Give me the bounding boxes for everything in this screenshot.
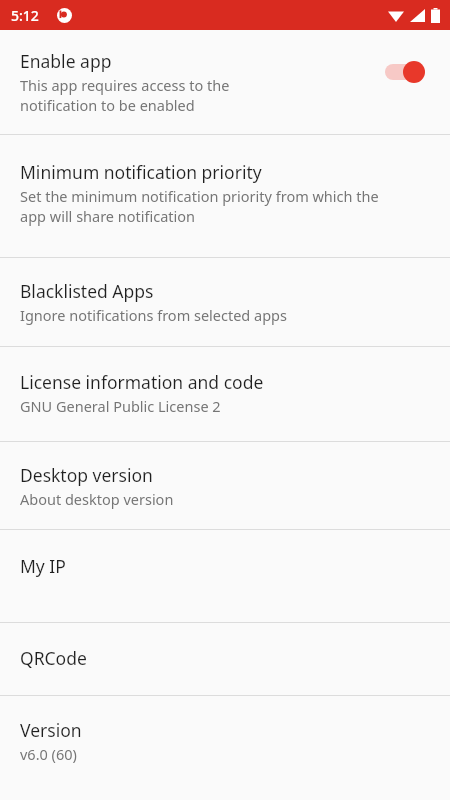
staticText: 5:12 xyxy=(11,6,39,25)
button[interactable]: Enable app xyxy=(0,30,450,134)
staticText: Minimum notification priority xyxy=(20,160,262,184)
staticText: v6.0 (60) xyxy=(20,744,77,764)
staticText: QRCode xyxy=(20,646,87,670)
button[interactable]: My IP xyxy=(0,530,450,622)
staticText: Ignore notifications from selected apps xyxy=(20,305,287,325)
button[interactable]: QRCode xyxy=(0,623,450,695)
button[interactable]: Version xyxy=(0,696,450,800)
button[interactable]: Blacklisted Apps xyxy=(0,258,450,346)
button[interactable]: Desktop version xyxy=(0,442,450,529)
staticText: My IP xyxy=(20,554,66,578)
button[interactable]: License information and code xyxy=(0,347,450,441)
button[interactable]: Minimum notification priority xyxy=(0,135,450,257)
staticText: Set the minimum notification priority fr… xyxy=(20,186,379,227)
staticText: About desktop version xyxy=(20,489,174,509)
staticText: GNU General Public License 2 xyxy=(20,396,221,416)
staticText: Version xyxy=(20,718,82,742)
button[interactable]: Enable app xyxy=(382,55,436,89)
staticText: This app requires access to the notifica… xyxy=(20,75,230,116)
staticText: License information and code xyxy=(20,370,264,394)
staticText: Blacklisted Apps xyxy=(20,279,154,303)
staticText: Desktop version xyxy=(20,463,153,487)
staticText: Enable app xyxy=(20,49,112,73)
